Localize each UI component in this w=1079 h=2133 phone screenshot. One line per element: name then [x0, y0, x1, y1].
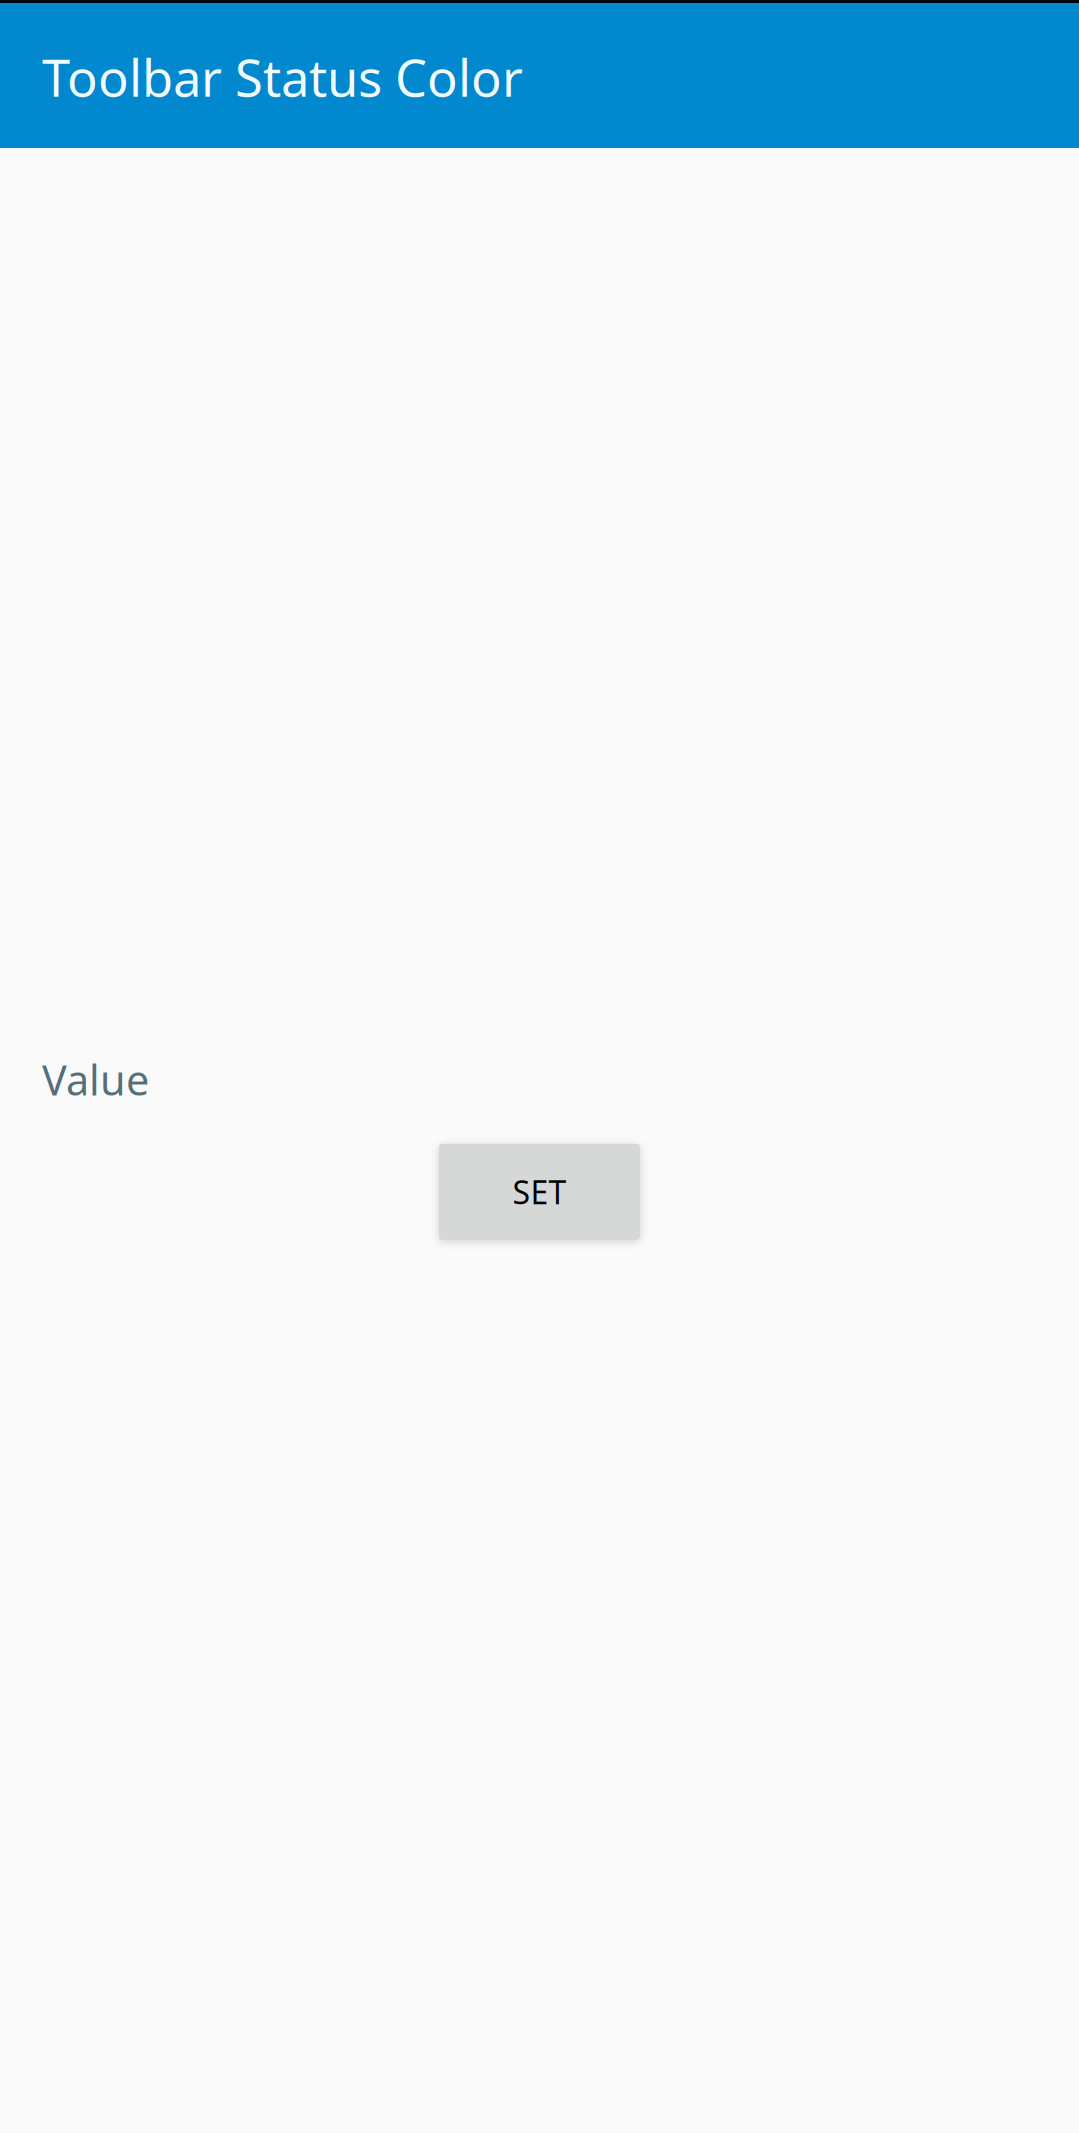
staticText: Toolbar Status Color	[42, 43, 523, 111]
staticText: SET	[512, 1171, 566, 1213]
button[interactable]: SET	[439, 1144, 640, 1240]
staticText: Value	[42, 1052, 149, 1107]
